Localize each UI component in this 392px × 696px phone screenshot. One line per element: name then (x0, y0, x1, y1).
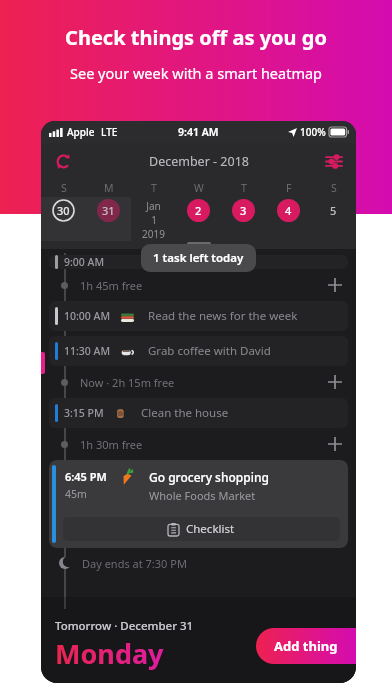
button[interactable]: Add task (322, 431, 348, 457)
staticText: 6:45 PM (65, 469, 107, 484)
staticText: 3 (240, 203, 247, 218)
button[interactable]: Sync (49, 147, 77, 175)
staticText: S (61, 181, 67, 195)
staticText: Read the news for the week (148, 308, 298, 324)
button[interactable]: 6:45 PM (49, 460, 348, 548)
staticText: F (286, 181, 292, 195)
staticText: 10:00 AM (64, 309, 111, 323)
staticText: Grab coffee with David (148, 343, 271, 359)
button[interactable]: Add task (322, 369, 348, 395)
staticText: 5 (330, 203, 337, 218)
staticText: T (241, 181, 247, 195)
button[interactable]: S (41, 181, 86, 222)
staticText: S (331, 181, 337, 195)
staticText: Jan (146, 199, 161, 213)
button[interactable]: Add thing (256, 628, 356, 664)
staticText: 4 (285, 203, 292, 218)
staticText: Tomorrow · December 31 (55, 618, 194, 634)
button[interactable]: T (131, 181, 176, 241)
button[interactable]: T (221, 181, 266, 222)
staticText: 11:30 AM (64, 344, 111, 358)
staticText: Checklist (186, 521, 235, 537)
staticText: 30 (57, 203, 70, 218)
staticText: Go grocery shopping (149, 469, 269, 485)
button[interactable]: Filter (320, 147, 348, 175)
button[interactable]: 11:30 AM (49, 336, 348, 366)
staticText: Clean the house (141, 405, 229, 421)
staticText: December - 2018 (149, 153, 249, 170)
staticText: 31 (102, 203, 115, 218)
button[interactable]: Add task (322, 272, 348, 298)
staticText: Now · 2h 15m free (80, 375, 175, 390)
staticText: Apple (67, 125, 95, 139)
staticText: 2 (195, 203, 202, 218)
staticText: 9:00 AM (64, 255, 105, 269)
staticText: 1h 45m free (80, 278, 143, 293)
staticText: 1h 30m free (80, 437, 143, 452)
staticText: Check things off as you go (65, 24, 327, 51)
button[interactable]: 9:00 AM (49, 255, 348, 269)
button[interactable]: 10:00 AM (49, 301, 348, 331)
button[interactable]: W (176, 181, 221, 222)
staticText: T (151, 181, 157, 195)
staticText: See your week with a smart heatmap (70, 63, 322, 83)
staticText: 9:41 AM (178, 125, 219, 139)
staticText: W (194, 181, 204, 195)
staticText: M (104, 181, 114, 195)
staticText: 1 (151, 213, 157, 227)
staticText: 3:15 PM (64, 406, 104, 420)
button[interactable]: M (86, 181, 131, 222)
button[interactable]: F (266, 181, 311, 222)
button[interactable]: S (311, 181, 356, 222)
staticText: Go for a run (142, 255, 208, 269)
button[interactable]: 3:15 PM (49, 398, 348, 428)
button[interactable]: 1 task left today (141, 244, 256, 272)
staticText: Whole Foods Market (149, 488, 256, 503)
button[interactable]: Checklist (63, 517, 340, 541)
staticText: 45m (65, 487, 87, 501)
staticText: Monday (55, 635, 164, 672)
staticText: 100% (300, 125, 326, 139)
staticText: LTE (101, 125, 118, 139)
staticText: 2019 (142, 227, 165, 241)
staticText: Add thing (274, 637, 338, 655)
staticText: 1 task left today (153, 250, 244, 266)
staticText: Day ends at 7:30 PM (82, 556, 187, 571)
